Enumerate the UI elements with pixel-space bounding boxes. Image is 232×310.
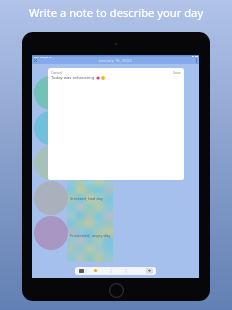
staticText: Stressed, bad day [70, 196, 104, 201]
button[interactable]: Save [171, 69, 183, 76]
button[interactable]: More options [195, 58, 198, 63]
staticText: 9:41 Tue Jan 15 [34, 55, 52, 58]
button[interactable]: Keyboard [79, 269, 84, 273]
staticText: Write a note to describe your day [0, 5, 232, 20]
button[interactable]: Cancel [49, 69, 65, 76]
staticText: Save [173, 70, 181, 75]
staticText: Today was exhausting [51, 75, 95, 81]
button[interactable]: Close [33, 58, 38, 63]
staticText: Cancel [51, 70, 63, 75]
button[interactable]: Emoji [94, 269, 97, 272]
button[interactable]: Collapse keyboard [146, 268, 153, 274]
staticText: January 15, 2022 [99, 58, 132, 64]
staticText: Frustrated, angry day [70, 233, 111, 238]
